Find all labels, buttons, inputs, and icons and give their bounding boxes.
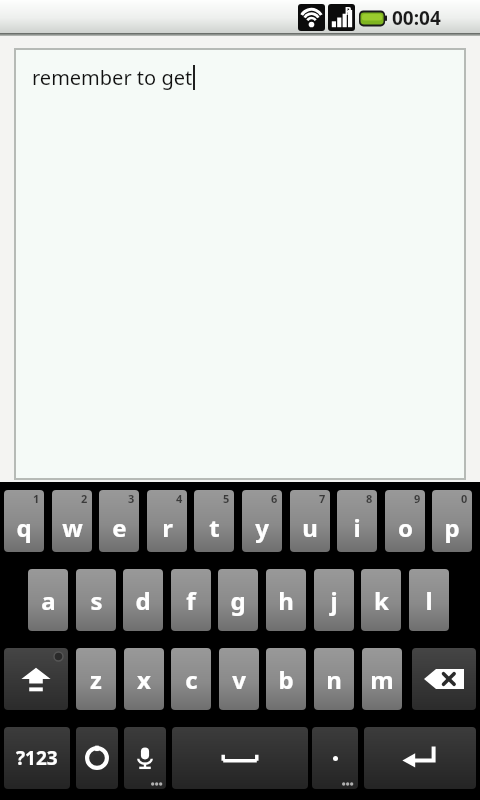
staticText: z	[90, 663, 102, 696]
button[interactable]: b	[266, 648, 306, 710]
staticText: m	[370, 663, 394, 696]
staticText: s	[90, 584, 103, 617]
staticText: p	[444, 511, 460, 544]
button[interactable]: v	[219, 648, 259, 710]
button[interactable]: z	[76, 648, 116, 710]
staticText: k	[374, 584, 389, 617]
button[interactable]: 9	[385, 490, 425, 552]
button[interactable]: 2	[52, 490, 92, 552]
staticText: 6	[271, 491, 278, 506]
button[interactable]: Space	[172, 727, 308, 789]
staticText: a	[41, 584, 56, 617]
staticText: 1	[33, 491, 40, 506]
staticText: l	[425, 584, 433, 617]
button[interactable]: j	[314, 569, 354, 631]
button[interactable]: 6	[242, 490, 282, 552]
button[interactable]: remember to get	[16, 50, 464, 478]
staticText: n	[326, 663, 342, 696]
staticText: y	[255, 511, 269, 544]
button[interactable]: 4	[147, 490, 187, 552]
staticText: u	[302, 511, 318, 544]
staticText: o	[398, 511, 413, 544]
staticText: 4	[176, 491, 183, 506]
staticText: x	[137, 663, 151, 696]
staticText: 5	[223, 491, 230, 506]
staticText: h	[278, 584, 294, 617]
button[interactable]: 5	[194, 490, 234, 552]
staticText: i	[353, 511, 361, 544]
staticText: 8	[366, 491, 373, 506]
staticText: ?123	[16, 745, 58, 771]
button[interactable]: h	[266, 569, 306, 631]
button[interactable]: Input method	[76, 727, 118, 789]
button[interactable]: 0	[432, 490, 472, 552]
button[interactable]: g	[218, 569, 258, 631]
button[interactable]: Shift	[4, 648, 68, 710]
staticText: g	[230, 584, 246, 617]
staticText: r	[162, 511, 173, 544]
button[interactable]: f	[171, 569, 211, 631]
button[interactable]: 7	[290, 490, 330, 552]
staticText: v	[232, 663, 246, 696]
staticText: j	[330, 584, 338, 617]
button[interactable]: Symbols	[4, 727, 70, 789]
staticText: 0	[461, 491, 468, 506]
staticText: 00:04	[392, 5, 441, 31]
staticText: f	[186, 584, 196, 617]
button[interactable]: c	[171, 648, 211, 710]
staticText: t	[209, 511, 220, 544]
staticText: 2	[81, 491, 88, 506]
staticText: d	[135, 584, 151, 617]
button[interactable]: l	[409, 569, 449, 631]
button[interactable]: a	[28, 569, 68, 631]
staticText: b	[278, 663, 294, 696]
button[interactable]: m	[362, 648, 402, 710]
staticText: w	[62, 511, 83, 544]
button[interactable]: k	[361, 569, 401, 631]
button[interactable]: 3	[99, 490, 139, 552]
button[interactable]: Period	[312, 727, 358, 789]
button[interactable]: 8	[337, 490, 377, 552]
button[interactable]: Delete	[412, 648, 476, 710]
button[interactable]: n	[314, 648, 354, 710]
button[interactable]: x	[124, 648, 164, 710]
staticText: e	[112, 511, 127, 544]
staticText: q	[16, 511, 32, 544]
button[interactable]: Enter	[364, 727, 476, 789]
staticText: 3	[128, 491, 135, 506]
staticText: remember to get	[32, 64, 193, 91]
staticText: 9	[414, 491, 421, 506]
button[interactable]: Voice input	[124, 727, 166, 789]
button[interactable]: 1	[4, 490, 44, 552]
button[interactable]: s	[76, 569, 116, 631]
staticText: c	[185, 663, 198, 696]
staticText: 7	[319, 491, 326, 506]
button[interactable]: d	[123, 569, 163, 631]
staticText: R	[345, 4, 352, 18]
